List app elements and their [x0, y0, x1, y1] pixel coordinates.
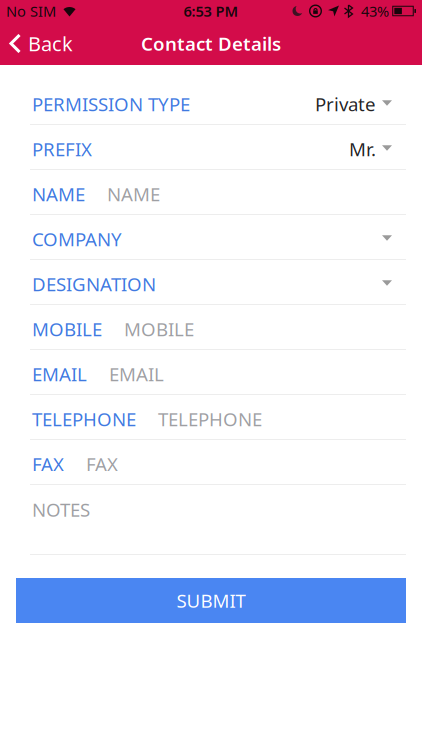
staticText: NAME	[107, 182, 160, 206]
button[interactable]: EMAIL	[0, 350, 422, 394]
button[interactable]: TELEPHONE	[0, 395, 422, 439]
staticText: EMAIL	[32, 362, 87, 386]
staticText: Mr.	[349, 137, 376, 161]
staticText: Contact Details	[141, 31, 281, 56]
button[interactable]: PREFIX	[0, 125, 422, 169]
staticText: NOTES	[32, 497, 90, 522]
staticText: Back	[28, 30, 73, 57]
staticText: FAX	[86, 452, 118, 476]
button[interactable]: SUBMIT	[16, 578, 406, 623]
staticText: PERMISSION TYPE	[32, 92, 190, 116]
button[interactable]: MOBILE	[0, 305, 422, 349]
staticText: PREFIX	[32, 137, 92, 161]
button[interactable]: COMPANY	[0, 215, 422, 259]
staticText: Private	[315, 92, 376, 116]
button[interactable]: FAX	[0, 440, 422, 484]
staticText: TELEPHONE	[32, 407, 136, 431]
button[interactable]: NAME	[0, 170, 422, 214]
staticText: 43%	[361, 1, 389, 21]
staticText: 6:53 PM	[183, 1, 238, 21]
staticText: MOBILE	[32, 317, 102, 341]
staticText: DESIGNATION	[32, 272, 156, 296]
button[interactable]: DESIGNATION	[0, 260, 422, 304]
button[interactable]: Back	[0, 22, 81, 64]
staticText: EMAIL	[109, 362, 164, 386]
button[interactable]: PERMISSION TYPE	[0, 80, 422, 124]
staticText: MOBILE	[124, 317, 194, 341]
staticText: NAME	[32, 182, 85, 206]
staticText: SUBMIT	[176, 588, 245, 613]
staticText: FAX	[32, 452, 64, 476]
staticText: TELEPHONE	[158, 407, 262, 431]
staticText: No SIM	[6, 1, 56, 21]
staticText: COMPANY	[32, 227, 122, 251]
button[interactable]: NOTES	[0, 485, 422, 554]
